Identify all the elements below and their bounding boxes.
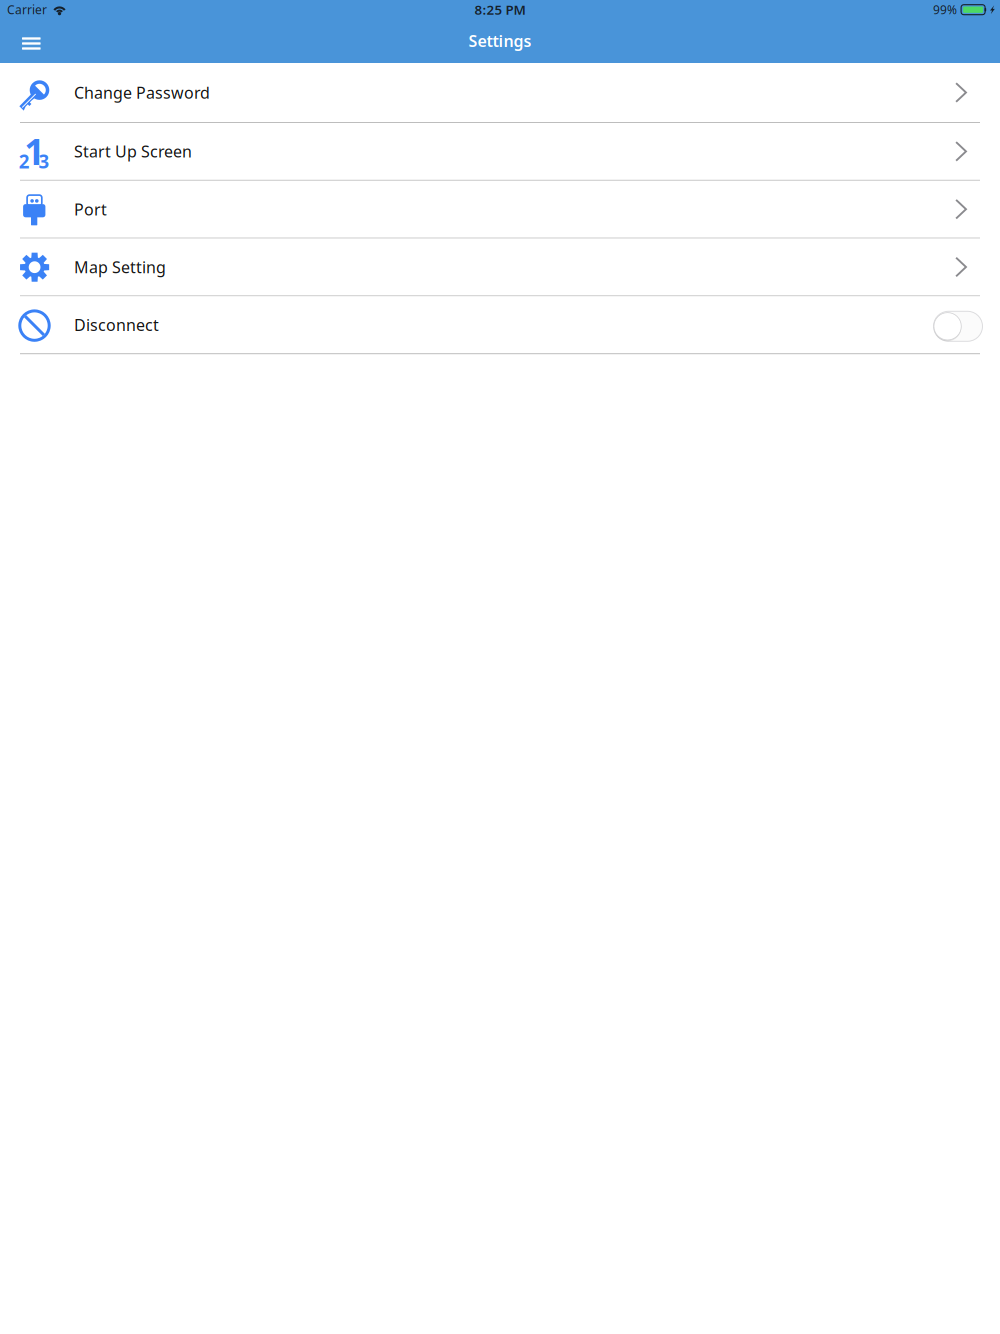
staticText: Start Up Screen xyxy=(74,141,192,162)
staticText: Carrier xyxy=(7,2,47,18)
staticText: Change Password xyxy=(74,82,210,103)
button[interactable]: Disconnect xyxy=(0,296,1000,354)
button[interactable]: Port xyxy=(0,181,1000,239)
button[interactable]: 2 xyxy=(0,123,1000,181)
staticText: Port xyxy=(74,199,107,220)
staticText: 3 xyxy=(38,149,49,174)
staticText: 8:25 PM xyxy=(474,1,525,18)
button[interactable]: Map Setting xyxy=(0,239,1000,296)
staticText: 1 xyxy=(24,127,45,175)
staticText: 2 xyxy=(19,149,30,174)
staticText: 99% xyxy=(933,2,957,18)
staticText: Disconnect xyxy=(74,314,159,335)
staticText: Settings xyxy=(468,30,531,51)
button[interactable]: Change Password xyxy=(0,63,1000,123)
staticText: Map Setting xyxy=(74,256,166,278)
button[interactable]: Menu xyxy=(0,24,63,63)
